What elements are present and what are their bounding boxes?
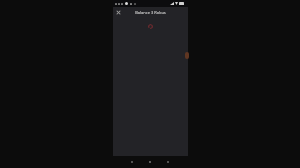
- button[interactable]: Recent apps: [163, 157, 173, 167]
- button[interactable]: Back: [127, 157, 137, 167]
- staticText: Balance 3 Rokus: [135, 10, 166, 15]
- button[interactable]: Close: [114, 8, 123, 17]
- button[interactable]: Side handle: [185, 52, 189, 59]
- button[interactable]: Home: [145, 157, 155, 167]
